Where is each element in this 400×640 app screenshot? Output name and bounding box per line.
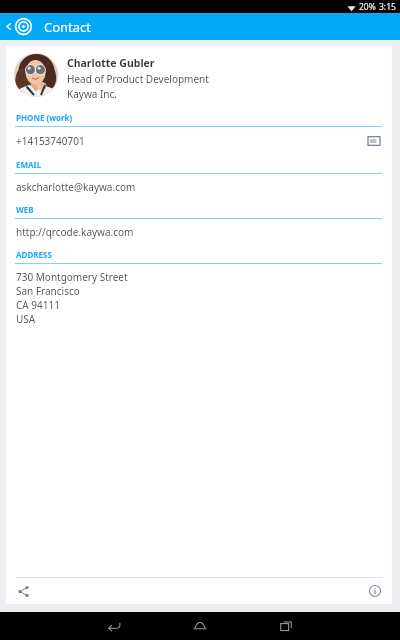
staticText: ADDRESS [16,249,52,260]
staticText: 730 Montgomery Street [16,270,128,284]
button[interactable]: http://qrcode.kaywa.com [6,219,392,246]
button[interactable]: Info [364,580,386,602]
staticText: USA [16,312,36,326]
staticText: askcharlotte@kaywa.com [16,180,136,194]
staticText: CA 94111 [16,298,60,312]
button[interactable]: +14153740701 [6,127,392,156]
staticText: Contact [44,18,92,36]
staticText: WEB [16,204,34,215]
button[interactable]: Recents [243,612,329,640]
staticText: 3:15 [379,1,396,13]
staticText: San Francisco [16,284,80,298]
button[interactable]: Share [12,580,34,602]
button[interactable]: askcharlotte@kaywa.com [6,174,392,201]
staticText: Charlotte Gubler [67,56,155,70]
staticText: PHONE (work) [16,112,73,123]
staticText: http://qrcode.kaywa.com [16,225,134,239]
staticText: Kaywa Inc. [67,87,118,101]
staticText: 20% [359,1,376,13]
staticText: +14153740701 [16,134,85,148]
button[interactable]: Back [0,13,37,40]
button[interactable]: Home [157,612,243,640]
button[interactable]: Back [71,612,157,640]
staticText: Head of Product Development [67,72,209,86]
button[interactable]: Send message [366,133,382,149]
button[interactable]: 730 Montgomery Street [6,264,392,333]
staticText: EMAIL [16,159,42,170]
